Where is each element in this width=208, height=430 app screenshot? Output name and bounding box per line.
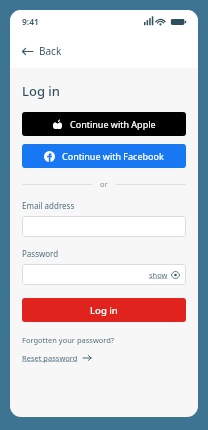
other: Show password: [171, 272, 180, 278]
button[interactable]: Back: [10, 34, 198, 68]
staticText: Continue with Facebook: [62, 150, 164, 162]
staticText: 9:41: [22, 16, 39, 28]
button[interactable]: Continue with Facebook: [22, 144, 186, 168]
other: Back: [22, 46, 33, 57]
staticText: Email address: [22, 200, 75, 211]
staticText: Reset password: [22, 353, 78, 363]
button[interactable]: [22, 216, 186, 237]
button[interactable]: Log in: [22, 298, 186, 322]
button[interactable]: Continue with Apple: [22, 112, 186, 136]
staticText: Forgotten your password?: [22, 335, 115, 345]
staticText: Password: [22, 248, 59, 259]
button[interactable]: show: [22, 264, 186, 285]
button[interactable]: show: [149, 270, 180, 280]
staticText: or: [100, 179, 108, 189]
staticText: show: [149, 270, 168, 280]
staticText: Log in: [22, 82, 60, 100]
staticText: Continue with Apple: [70, 118, 156, 130]
staticText: Back: [39, 44, 62, 58]
staticText: Log in: [90, 304, 118, 317]
button[interactable]: Reset password: [22, 353, 91, 363]
